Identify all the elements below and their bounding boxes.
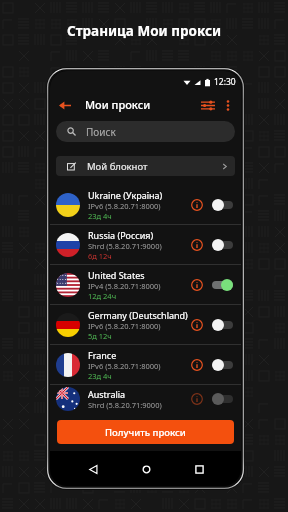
staticText: Мой блокнот [87,160,148,173]
staticText: Shrd (5.8.20.71:9000) [88,241,162,251]
button[interactable]: Info [190,392,204,406]
staticText: Получить прокси [105,426,186,439]
staticText: Australia [88,388,126,400]
staticText: IPv4 (5.8.20.71:8000) [88,281,161,291]
button[interactable]: Filter [197,95,219,115]
staticText: France [88,349,117,361]
staticText: 23д 4ч [88,371,112,381]
button[interactable]: Australia [50,385,241,412]
button[interactable]: Поиск [56,121,235,142]
button[interactable]: Info [190,198,204,212]
staticText: Shrd (5.8.20.71:9000) [88,400,162,410]
button[interactable]: Home [135,458,157,480]
staticText: Страница Мои прокси [67,22,222,40]
staticText: Мои прокси [85,97,151,112]
staticText: 12:30 [214,76,236,88]
staticText: IPv6 (5.8.20.71:8000) [88,201,161,211]
button[interactable]: More options [219,95,237,115]
button[interactable]: France [50,345,241,384]
staticText: 12д 24ч [88,291,117,301]
button[interactable]: United States [50,265,241,304]
staticText: IPv6 (5.8.20.71:8000) [88,321,161,331]
button[interactable]: Info [190,238,204,252]
staticText: 6д 12ч [88,251,112,261]
button[interactable]: Enable proxy [211,238,233,252]
button[interactable]: Recent apps [188,458,210,480]
button[interactable]: Back [82,458,104,480]
button[interactable]: Enable proxy [211,318,233,332]
button[interactable]: Получить прокси [57,420,234,444]
button[interactable]: Info [190,358,204,372]
staticText: 23д 4ч [88,211,112,221]
button[interactable]: Enable proxy [211,278,233,292]
staticText: 5д 12ч [88,331,112,341]
button[interactable]: Info [190,318,204,332]
button[interactable]: Germany (Deutschland) [50,305,241,344]
button[interactable]: Enable proxy [211,358,233,372]
button[interactable]: Мой блокнот [56,156,235,176]
staticText: Ukraine (Україна) [88,189,163,201]
button[interactable]: Back [55,95,75,115]
staticText: Russia (Россия) [88,229,154,241]
button[interactable]: Info [190,278,204,292]
staticText: Germany (Deutschland) [88,309,188,321]
button[interactable]: Enable proxy [211,198,233,212]
staticText: United States [88,269,145,281]
button[interactable]: Ukraine (Україна) [50,185,241,224]
button[interactable]: Russia (Россия) [50,225,241,264]
button[interactable]: Enable proxy [211,392,233,406]
staticText: IPv6 (5.8.20.71:8000) [88,361,161,371]
staticText: Поиск [86,125,116,139]
